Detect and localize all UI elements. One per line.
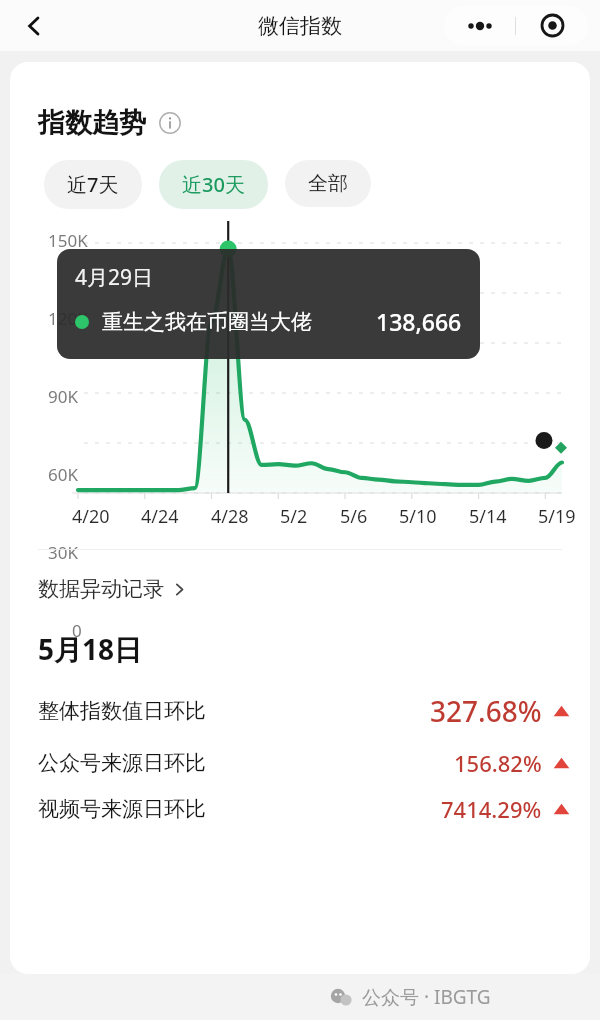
staticText: 4/28	[211, 504, 249, 529]
button[interactable]: 全部	[285, 160, 371, 207]
staticText: 4/24	[141, 504, 179, 529]
staticText: 公众号来源日环比	[38, 750, 206, 776]
staticText: 0	[72, 619, 82, 642]
staticText: 近7天	[67, 171, 119, 198]
staticText: 138,666	[376, 306, 462, 337]
button[interactable]: Info	[158, 111, 182, 135]
staticText: 5/6	[340, 504, 368, 529]
button[interactable]: 数据异动记录	[38, 576, 187, 602]
staticText: 视频号来源日环比	[38, 796, 206, 822]
button[interactable]: More options	[444, 6, 515, 45]
staticText: 327.68%	[430, 692, 542, 730]
staticText: 微信指数	[258, 13, 342, 39]
button[interactable]: Back	[12, 4, 56, 48]
staticText: 全部	[308, 171, 348, 196]
staticText: 重生之我在币圈当大佬	[102, 309, 312, 335]
staticText: 公众号 · IBGTG	[362, 984, 491, 1010]
staticText: 60K	[48, 463, 78, 486]
staticText: 5/10	[399, 504, 437, 529]
staticText: 30K	[48, 541, 78, 564]
button[interactable]: 公众号来源日环比	[10, 748, 590, 778]
button[interactable]: 整体指数值日环比	[10, 692, 590, 730]
button[interactable]: 近7天	[44, 160, 142, 209]
staticText: 整体指数值日环比	[38, 698, 206, 724]
staticText: 指数趋势	[38, 106, 146, 140]
staticText: 近30天	[182, 171, 245, 198]
staticText: 5月18日	[38, 630, 143, 668]
staticText: 4月29日	[75, 263, 154, 292]
staticText: 4/20	[72, 504, 110, 529]
staticText: 5/2	[280, 504, 308, 529]
button[interactable]: 视频号来源日环比	[10, 794, 590, 824]
button[interactable]: Close	[516, 6, 588, 45]
staticText: 7414.29%	[441, 794, 542, 824]
staticText: 90K	[48, 385, 78, 408]
staticText: 数据异动记录	[38, 576, 164, 602]
button[interactable]: 近30天	[159, 160, 268, 209]
staticText: 5/19	[538, 504, 576, 529]
staticText: 156.82%	[454, 748, 542, 778]
staticText: 150K	[48, 229, 88, 252]
staticText: 120K	[48, 307, 88, 330]
staticText: 5/14	[469, 504, 507, 529]
